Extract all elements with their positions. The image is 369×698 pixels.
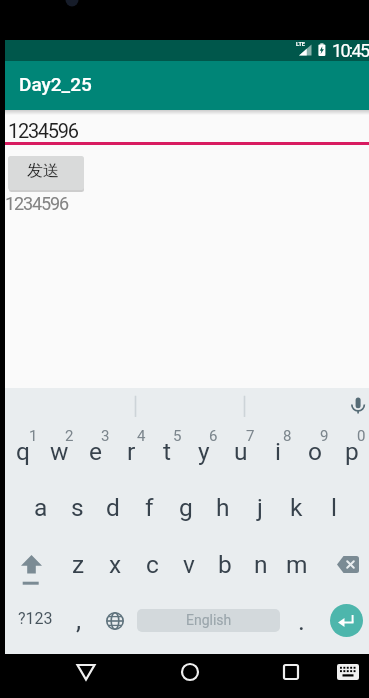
staticText: g [179,493,193,522]
button[interactable]: z [60,539,97,597]
staticText: 3 [101,427,110,445]
button[interactable]: a [23,482,59,540]
staticText: LTE [296,41,305,47]
staticText: n [254,550,268,579]
staticText: t [163,437,172,466]
staticText: 10:45 [332,40,369,61]
button[interactable]: e [77,424,113,482]
staticText: 4 [137,427,146,445]
staticText: 1 [29,427,38,445]
button[interactable]: 发送 [8,156,84,190]
button[interactable]: v [171,539,207,597]
button[interactable]: b [207,539,243,597]
staticText: 6 [209,427,218,445]
button[interactable]: k [278,482,315,540]
button[interactable]: r [113,424,149,482]
button[interactable] [315,539,369,597]
staticText: j [257,493,263,522]
button[interactable]: o [296,424,333,482]
button[interactable]: . [289,597,313,655]
staticText: , [76,605,82,635]
staticText: English [186,612,232,628]
button[interactable]: m [279,539,315,597]
staticText: i [275,437,281,466]
button[interactable]: p [333,424,369,482]
staticText: v [183,550,195,579]
button[interactable]: d [95,482,131,540]
staticText: o [308,437,322,466]
button[interactable]: c [134,539,171,597]
button[interactable]: h [204,482,241,540]
button[interactable]: f [131,482,167,540]
staticText: 9 [320,427,329,445]
button[interactable]: y [185,424,222,482]
staticText: r [127,437,136,466]
button[interactable]: i [259,424,296,482]
staticText: d [106,493,120,522]
staticText: 2 [65,427,74,445]
staticText: q [16,437,30,466]
staticText: c [146,550,159,579]
staticText: y [198,437,210,466]
button[interactable] [5,388,369,424]
staticText: 0 [357,427,366,445]
button[interactable] [123,654,246,698]
button[interactable]: English [137,609,280,632]
button[interactable]: g [167,482,204,540]
button[interactable]: ?123 [9,597,59,655]
staticText: 1234596 [8,119,78,142]
staticText: a [34,493,48,522]
staticText: e [89,437,102,466]
button[interactable]: q [5,424,41,482]
button[interactable] [0,654,123,698]
staticText: h [216,493,230,522]
button[interactable]: , [67,597,90,655]
button[interactable] [100,597,130,655]
staticText: s [71,493,84,522]
staticText: f [145,493,154,522]
staticText: 5 [173,427,182,445]
staticText: Day2_25 [19,73,92,95]
button[interactable]: j [241,482,278,540]
button[interactable]: s [59,482,95,540]
staticText: m [286,550,308,579]
staticText: . [298,606,305,636]
button[interactable] [5,539,60,597]
staticText: p [345,437,359,466]
staticText: k [290,493,303,522]
staticText: b [218,550,232,579]
button[interactable]: l [315,482,352,540]
staticText: 发送 [27,161,59,181]
button[interactable] [246,654,369,698]
button[interactable]: w [41,424,77,482]
staticText: 8 [283,427,292,445]
staticText: z [72,550,85,579]
staticText: 7 [246,427,255,445]
staticText: u [234,437,248,466]
staticText: 1234596 [5,193,69,214]
staticText: l [331,493,337,522]
staticText: ?123 [18,609,53,628]
button[interactable]: n [243,539,279,597]
staticText: w [50,437,69,466]
button[interactable] [330,604,363,637]
button[interactable]: t [149,424,185,482]
button[interactable]: x [97,539,134,597]
button[interactable]: u [222,424,259,482]
staticText: x [109,550,122,579]
